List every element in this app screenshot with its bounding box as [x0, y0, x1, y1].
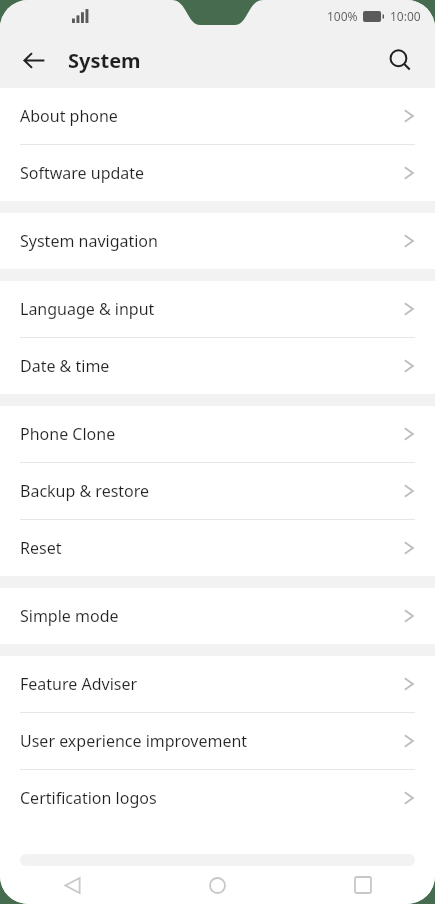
- button[interactable]: Search: [379, 39, 421, 81]
- button[interactable]: Feature Adviser: [0, 656, 435, 712]
- button[interactable]: System navigation: [0, 213, 435, 269]
- button[interactable]: Software update: [0, 145, 435, 201]
- button[interactable]: Back: [14, 40, 54, 80]
- staticText: About phone: [20, 105, 403, 127]
- button[interactable]: Simple mode: [0, 588, 435, 644]
- button[interactable]: Reset: [0, 520, 435, 576]
- button[interactable]: Home: [145, 866, 290, 904]
- button[interactable]: Recent apps: [290, 866, 435, 904]
- staticText: 10:00: [390, 8, 421, 24]
- button[interactable]: Certification logos: [0, 770, 435, 826]
- staticText: Feature Adviser: [20, 673, 403, 695]
- button[interactable]: User experience improvement: [0, 713, 435, 769]
- staticText: System: [68, 47, 141, 74]
- button[interactable]: Date & time: [0, 338, 435, 394]
- staticText: Certification logos: [20, 787, 403, 809]
- button[interactable]: About phone: [0, 88, 435, 144]
- button[interactable]: Backup & restore: [0, 463, 435, 519]
- button[interactable]: Language & input: [0, 281, 435, 337]
- staticText: User experience improvement: [20, 730, 403, 752]
- staticText: Backup & restore: [20, 480, 403, 502]
- staticText: Language & input: [20, 298, 403, 320]
- button[interactable]: Phone Clone: [0, 406, 435, 462]
- staticText: System navigation: [20, 230, 403, 252]
- staticText: Software update: [20, 162, 403, 184]
- staticText: Date & time: [20, 355, 403, 377]
- staticText: 100%: [327, 8, 358, 24]
- staticText: Phone Clone: [20, 423, 403, 445]
- staticText: Reset: [20, 537, 403, 559]
- button[interactable]: Back: [0, 866, 145, 904]
- staticText: Simple mode: [20, 605, 403, 627]
